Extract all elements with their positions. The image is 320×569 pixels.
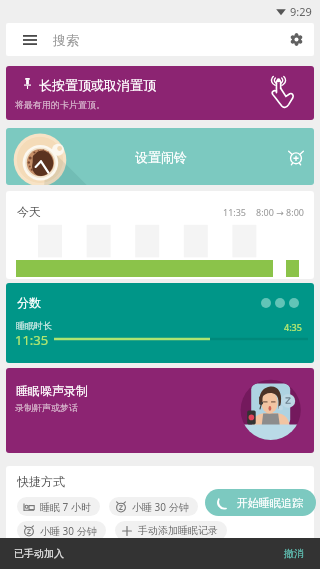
button[interactable]: Settings <box>278 23 314 56</box>
staticText: 手动添加睡眠记录 <box>138 524 218 537</box>
staticText: 将最有用的卡片置顶。 <box>15 99 105 110</box>
staticText: 11:35 <box>15 331 49 349</box>
button[interactable]: 开始睡眠追踪 <box>205 489 316 516</box>
staticText: 开始睡眠追踪 <box>237 496 303 510</box>
button[interactable]: 小睡 30 分钟 <box>109 497 198 516</box>
staticText: 4:35 <box>284 321 302 333</box>
button[interactable]: 长按置顶或取消置顶 <box>6 66 314 120</box>
staticText: 长按置顶或取消置顶 <box>39 77 156 93</box>
staticText: 已手动加入 <box>14 547 64 560</box>
staticText: 快捷方式 <box>17 474 65 489</box>
staticText: 设置闹铃 <box>135 149 187 165</box>
staticText: 11:35 <box>223 206 247 218</box>
button[interactable]: Add alarm <box>284 145 308 169</box>
button[interactable]: Menu <box>12 23 48 56</box>
staticText: 睡眠 7 小时 <box>40 500 91 514</box>
button[interactable]: 小睡 30 分钟 <box>17 521 106 540</box>
button[interactable]: 睡眠噪声录制 <box>6 368 314 453</box>
button[interactable]: 睡眠 7 小时 <box>17 497 100 516</box>
staticText: 8:00 → 8:00 <box>256 206 304 218</box>
button[interactable]: 今天 <box>6 191 314 279</box>
staticText: 睡眠噪声录制 <box>16 383 88 398</box>
button[interactable]: 撤消 <box>284 547 320 560</box>
staticText: 今天 <box>17 204 41 219</box>
staticText: 搜索 <box>53 32 79 48</box>
button[interactable]: 手动添加睡眠记录 <box>115 521 227 540</box>
button[interactable]: 设置闹铃 <box>6 128 314 185</box>
button[interactable]: 分数 <box>6 283 314 363</box>
staticText: 分数 <box>17 295 41 310</box>
staticText: 9:29 <box>290 4 312 18</box>
staticText: 小睡 30 分钟 <box>132 500 189 514</box>
staticText: 睡眠时长 <box>16 320 52 331</box>
staticText: 录制鼾声或梦话 <box>15 402 78 413</box>
staticText: 小睡 30 分钟 <box>40 524 97 538</box>
